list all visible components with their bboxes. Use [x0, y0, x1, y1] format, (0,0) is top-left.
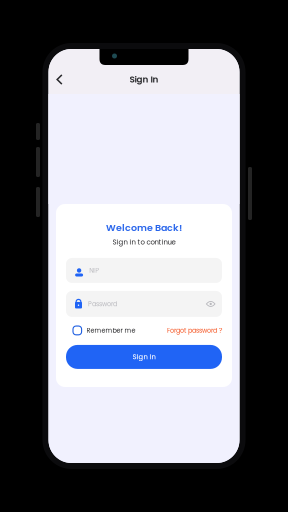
staticText: Forgot password ? — [167, 326, 222, 335]
button[interactable]: Back — [50, 68, 68, 90]
staticText: Password — [88, 299, 117, 308]
button[interactable]: Sign In — [66, 345, 222, 369]
staticText: Remember me — [87, 326, 136, 335]
staticText: Sign In — [129, 73, 158, 86]
staticText: NIP — [89, 266, 99, 275]
button[interactable]: Remember me — [73, 326, 136, 335]
button[interactable]: Forgot password ? — [167, 326, 222, 335]
staticText: Sign in to continue — [112, 237, 175, 247]
staticText: Welcome Back! — [106, 221, 182, 234]
staticText: Sign In — [132, 352, 155, 362]
button[interactable]: Show password — [206, 300, 215, 308]
